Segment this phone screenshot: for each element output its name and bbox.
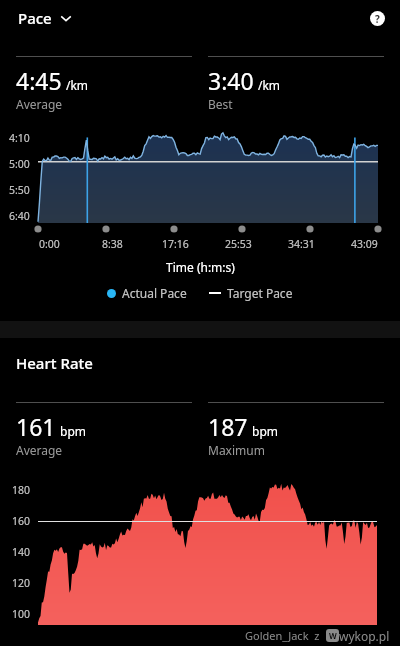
- staticText: 34:31: [288, 237, 315, 251]
- button[interactable]: 161: [16, 402, 192, 458]
- staticText: W: [329, 630, 337, 641]
- staticText: 4:10: [9, 131, 30, 145]
- staticText: /km: [66, 77, 89, 93]
- staticText: Average: [16, 96, 63, 112]
- staticText: 187: [208, 411, 248, 442]
- staticText: 5:00: [9, 157, 30, 171]
- button[interactable]: Help: [364, 5, 390, 31]
- staticText: 120: [12, 576, 31, 590]
- staticText: Heart Rate: [16, 353, 93, 373]
- button[interactable]: 187: [208, 402, 384, 458]
- staticText: Golden_Jack z: [245, 628, 326, 643]
- staticText: 160: [12, 514, 31, 528]
- staticText: bpm: [60, 423, 86, 439]
- staticText: 100: [12, 607, 31, 621]
- staticText: 161: [16, 411, 56, 442]
- staticText: 3:40: [208, 65, 254, 96]
- staticText: 140: [12, 545, 31, 559]
- staticText: 180: [12, 483, 31, 497]
- staticText: Best: [208, 96, 233, 112]
- staticText: 5:50: [9, 183, 30, 197]
- staticText: 0:00: [39, 237, 60, 251]
- staticText: Maximum: [208, 442, 265, 458]
- staticText: Time (h:m:s): [166, 259, 235, 275]
- button[interactable]: 4:45: [16, 56, 192, 112]
- button[interactable]: Pace: [16, 4, 74, 32]
- staticText: 8:38: [102, 237, 123, 251]
- staticText: /km: [258, 77, 281, 93]
- staticText: Average: [16, 442, 63, 458]
- staticText: Actual Pace: [122, 285, 187, 301]
- staticText: 43:09: [351, 237, 378, 251]
- staticText: 25:53: [225, 237, 252, 251]
- button[interactable]: 3:40: [208, 56, 384, 112]
- staticText: 17:16: [162, 237, 189, 251]
- staticText: wykop.pl: [339, 628, 390, 644]
- staticText: Pace: [18, 8, 52, 28]
- staticText: 4:45: [16, 65, 62, 96]
- staticText: ?: [375, 12, 380, 26]
- staticText: Target Pace: [227, 285, 293, 301]
- staticText: 6:40: [9, 209, 30, 223]
- staticText: bpm: [252, 423, 278, 439]
